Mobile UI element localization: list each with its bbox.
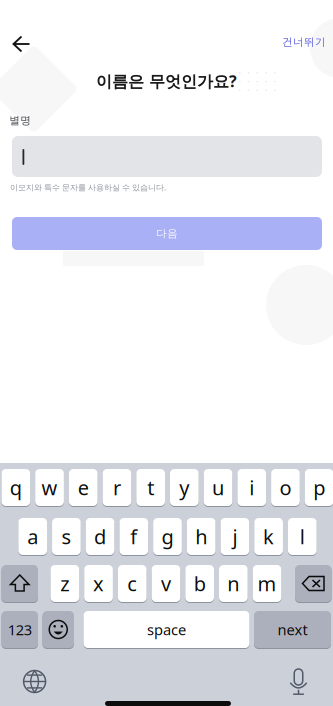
button[interactable]: Switch keyboard <box>16 664 54 698</box>
staticText: r <box>113 474 121 501</box>
button[interactable]: c <box>118 565 147 603</box>
button[interactable]: r <box>103 469 131 507</box>
staticText: f <box>130 523 137 550</box>
button[interactable]: m <box>253 565 281 603</box>
button[interactable]: Emoji <box>42 611 74 649</box>
staticText: u <box>212 474 224 501</box>
button[interactable]: 123 <box>1 611 38 649</box>
button[interactable]: s <box>52 518 81 556</box>
button[interactable]: z <box>50 565 79 603</box>
button[interactable]: a <box>18 518 47 556</box>
staticText: n <box>227 570 239 597</box>
staticText: 123 <box>8 620 32 639</box>
button[interactable]: b <box>185 565 214 603</box>
staticText: c <box>127 570 137 597</box>
staticText: 이름은 무엇인가요? <box>96 70 237 92</box>
staticText: e <box>78 474 89 501</box>
button[interactable]: h <box>187 518 215 556</box>
button[interactable]: Dictation <box>279 664 317 698</box>
staticText: s <box>61 523 71 550</box>
button[interactable]: u <box>204 469 232 507</box>
button[interactable]: q <box>1 469 30 507</box>
button[interactable]: t <box>136 469 165 507</box>
staticText: l <box>300 523 305 550</box>
staticText: 건너뛰기 <box>282 35 326 48</box>
staticText: z <box>60 570 69 597</box>
staticText: o <box>279 474 291 501</box>
button[interactable]: i <box>237 469 266 507</box>
staticText: m <box>258 570 277 597</box>
button[interactable]: y <box>170 469 199 507</box>
button[interactable]: n <box>219 565 248 603</box>
staticText: w <box>42 474 58 501</box>
button[interactable]: 건너뛰기 <box>272 29 326 55</box>
staticText: k <box>263 523 274 550</box>
button[interactable]: l <box>288 518 317 556</box>
staticText: p <box>313 474 325 501</box>
staticText: q <box>10 474 22 501</box>
staticText: d <box>94 523 106 550</box>
button[interactable]: Delete <box>295 565 331 603</box>
staticText: x <box>93 570 104 597</box>
button[interactable]: Shift <box>1 565 38 603</box>
staticText: next <box>277 620 307 639</box>
staticText: 이모지와 특수 문자를 사용하실 수 있습니다. <box>10 182 166 193</box>
staticText: 별명 <box>9 114 31 127</box>
staticText: a <box>27 523 38 550</box>
button[interactable]: 다음 <box>12 217 322 250</box>
staticText: t <box>147 474 154 501</box>
staticText: b <box>194 570 206 597</box>
button[interactable]: d <box>86 518 114 556</box>
staticText: h <box>195 523 207 550</box>
button[interactable]: w <box>35 469 64 507</box>
staticText: i <box>249 474 254 501</box>
staticText: j <box>232 523 237 550</box>
staticText: 다음 <box>156 227 178 240</box>
button[interactable]: Back <box>2 32 42 72</box>
staticText: v <box>161 570 171 597</box>
button[interactable]: j <box>221 518 249 556</box>
button[interactable]: e <box>69 469 98 507</box>
staticText: space <box>147 620 186 639</box>
button[interactable]: x <box>84 565 113 603</box>
staticText: g <box>161 523 173 550</box>
button[interactable]: f <box>119 518 148 556</box>
button[interactable]: space <box>83 611 249 649</box>
button[interactable]: g <box>153 518 182 556</box>
button[interactable]: k <box>254 518 283 556</box>
button[interactable]: v <box>152 565 180 603</box>
button[interactable]: p <box>305 469 333 507</box>
staticText: y <box>179 474 189 501</box>
button[interactable]: o <box>271 469 300 507</box>
button[interactable]: next <box>254 611 331 649</box>
